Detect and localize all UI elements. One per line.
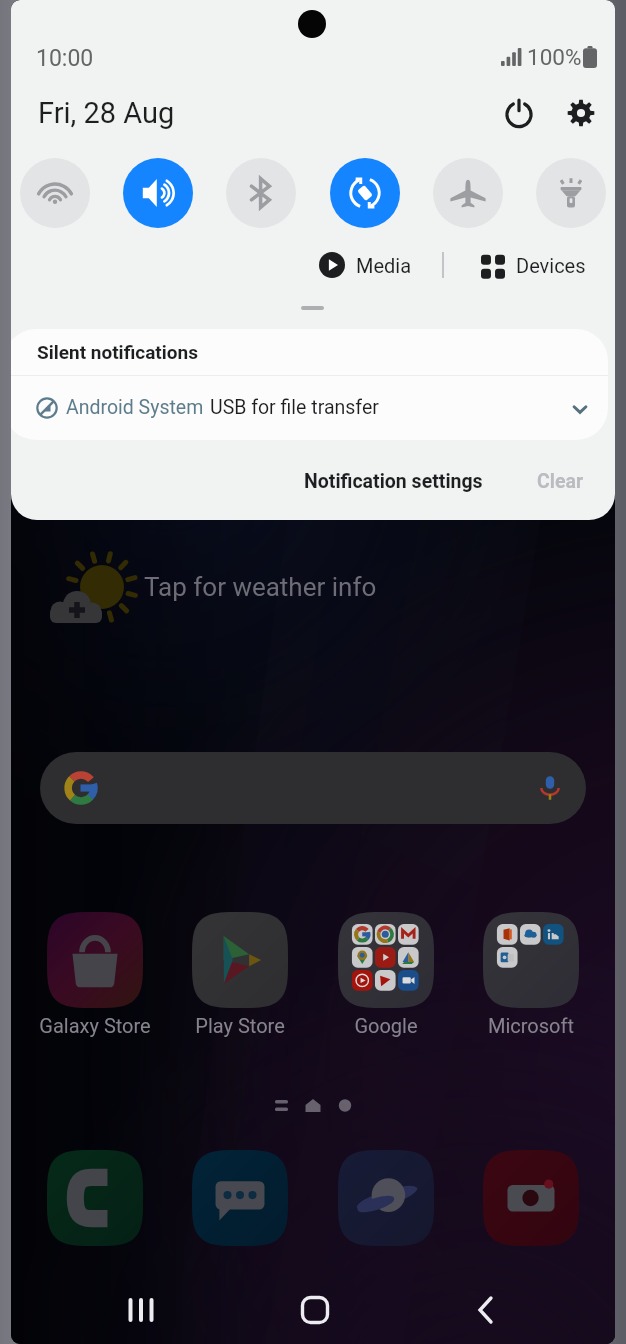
button[interactable]: Flashlight	[536, 158, 606, 228]
button[interactable]: Google	[316, 912, 456, 1008]
staticText: Fri, 28 Aug	[38, 96, 175, 130]
staticText: Tap for weather info	[144, 572, 377, 602]
button[interactable]: Auto rotate	[330, 158, 400, 228]
button[interactable]: Silent notifications	[11, 329, 608, 375]
staticText: Silent notifications	[37, 341, 198, 363]
button[interactable]: Home	[285, 1280, 345, 1340]
staticText: 100%	[527, 44, 582, 70]
button[interactable]: Airplane mode	[433, 158, 503, 228]
staticText: Play Store	[170, 1014, 310, 1037]
button[interactable]: Internet	[338, 1150, 434, 1246]
other: Expand	[569, 397, 591, 419]
button[interactable]: Bluetooth	[226, 158, 296, 228]
staticText: Media	[356, 254, 412, 277]
button[interactable]: Android System	[11, 376, 608, 439]
button[interactable]: Back	[456, 1280, 516, 1340]
staticText: Devices	[516, 254, 586, 277]
button[interactable]: Sound	[123, 158, 193, 228]
button[interactable]: Camera	[483, 1150, 579, 1246]
button[interactable]: Tap for weather info	[45, 547, 377, 633]
button[interactable]: Settings	[556, 88, 606, 138]
button[interactable]: Recent apps	[110, 1280, 170, 1340]
button[interactable]: Galaxy Store	[25, 912, 165, 1008]
staticText: Google	[316, 1014, 456, 1037]
button[interactable]: Microsoft	[461, 912, 601, 1008]
button[interactable]: Messages	[192, 1150, 288, 1246]
staticText: Microsoft	[461, 1014, 601, 1037]
staticText: 10:00	[36, 45, 94, 72]
button[interactable]	[40, 752, 586, 824]
staticText: Android System	[66, 396, 204, 419]
button[interactable]: Power off	[494, 88, 544, 138]
button[interactable]: Media	[315, 248, 416, 282]
button[interactable]: Wi-Fi	[20, 158, 90, 228]
button[interactable]: Notification settings	[298, 464, 489, 499]
button[interactable]: Phone	[47, 1150, 143, 1246]
button[interactable]: Play Store	[170, 912, 310, 1008]
button[interactable]: Clear	[531, 464, 590, 499]
staticText: USB for file transfer	[210, 396, 379, 419]
button[interactable]: Devices	[477, 249, 590, 281]
staticText: Galaxy Store	[25, 1014, 165, 1037]
